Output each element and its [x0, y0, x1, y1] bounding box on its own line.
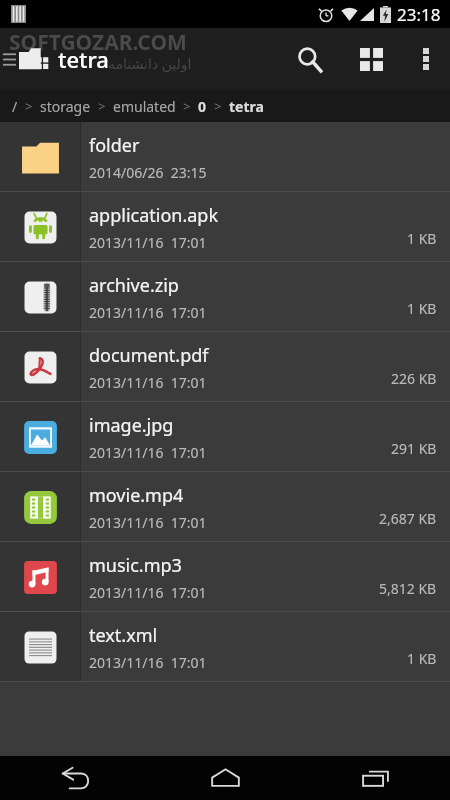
staticText: 2013/11/16 17:01 [89, 303, 207, 322]
staticText: 2013/11/16 17:01 [89, 653, 207, 672]
staticText: 1 KB [407, 299, 437, 318]
staticText: 1 KB [407, 229, 437, 248]
button[interactable]: tetra [18, 44, 117, 74]
button[interactable]: Home [150, 756, 300, 800]
button[interactable]: music.mp3 [0, 542, 450, 612]
staticText: storage [40, 97, 91, 116]
staticText: text.xml [89, 623, 158, 648]
button[interactable]: application.apk [0, 192, 450, 262]
button[interactable]: More options [402, 28, 450, 90]
button[interactable]: Grid view [340, 28, 402, 90]
staticText: music.mp3 [89, 553, 182, 578]
staticText: 2013/11/16 17:01 [89, 583, 207, 602]
staticText: emulated [113, 97, 176, 116]
button[interactable]: emulated [110, 97, 179, 116]
staticText: 2,687 KB [379, 509, 437, 528]
staticText: > [183, 97, 191, 115]
staticText: image.jpg [89, 413, 174, 438]
button[interactable]: Recent apps [300, 756, 450, 800]
staticText: 5,812 KB [379, 579, 437, 598]
button[interactable]: movie.mp4 [0, 472, 450, 542]
staticText: 0 [198, 97, 207, 116]
button[interactable]: 0 [195, 97, 210, 116]
staticText: folder [89, 133, 140, 158]
staticText: archive.zip [89, 273, 179, 298]
staticText: document.pdf [89, 343, 209, 368]
button[interactable]: Open navigation drawer [0, 28, 18, 90]
button[interactable]: tetra [226, 97, 267, 116]
staticText: / [12, 97, 18, 116]
staticText: 2014/06/26 23:15 [89, 163, 207, 182]
button[interactable]: archive.zip [0, 262, 450, 332]
staticText: tetra [58, 44, 109, 74]
button[interactable]: Search [278, 28, 340, 90]
button[interactable]: Back [0, 756, 150, 800]
staticText: 2013/11/16 17:01 [89, 513, 207, 532]
staticText: 226 KB [391, 369, 437, 388]
staticText: > [214, 97, 222, 115]
button[interactable]: text.xml [0, 612, 450, 682]
staticText: movie.mp4 [89, 483, 184, 508]
button[interactable]: image.jpg [0, 402, 450, 472]
staticText: tetra [229, 97, 264, 116]
button[interactable]: folder [0, 122, 450, 192]
staticText: 23:18 [397, 3, 441, 26]
staticText: 2013/11/16 17:01 [89, 233, 207, 252]
button[interactable]: storage [37, 97, 94, 116]
staticText: > [98, 97, 106, 115]
button[interactable]: / [9, 97, 21, 116]
staticText: 291 KB [391, 439, 437, 458]
staticText: 1 KB [407, 649, 437, 668]
button[interactable]: document.pdf [0, 332, 450, 402]
staticText: application.apk [89, 203, 219, 228]
staticText: 2013/11/16 17:01 [89, 373, 207, 392]
staticText: SOFTGOZAR.COM [9, 28, 187, 57]
staticText: اولین دانشنامه [108, 54, 192, 73]
staticText: 2013/11/16 17:01 [89, 443, 207, 462]
staticText: > [25, 97, 33, 115]
